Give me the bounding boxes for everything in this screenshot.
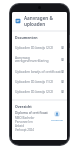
- button[interactable]: Certificaat: [50, 111, 64, 121]
- button[interactable]: Uploaden bewijs of certificaat: [15, 66, 64, 76]
- staticText: Uploaden ID-bewijs (1/2): [15, 79, 61, 83]
- other: Download: [61, 58, 64, 61]
- staticText: MBO Bachelor Personeel en: [15, 116, 48, 124]
- button[interactable]: Uploaden ID-bewijs (2/2): [15, 42, 64, 52]
- button[interactable]: Aanvraag werkgeversverklaring: [15, 52, 64, 66]
- staticText: Overzicht: [15, 104, 32, 109]
- other: Download: [61, 46, 64, 49]
- other: Certificaat: [54, 111, 60, 117]
- staticText: Uploaden bewijs of certificaat: [15, 69, 61, 73]
- button[interactable]: Uploaden ID-bewijs (1/2): [15, 76, 64, 86]
- other: Download: [61, 90, 64, 93]
- button[interactable]: Uploaden ID-bewijs (2/2): [15, 86, 64, 96]
- staticText: Documenten: [15, 35, 38, 40]
- other: App logo: [15, 18, 21, 24]
- staticText: Uploaden ID-bewijs (2/2): [15, 45, 61, 49]
- staticText: Verloopt 2024: [15, 128, 34, 132]
- staticText: Aanvragen & uploaden: [24, 15, 64, 27]
- staticText: Uploaden ID-bewijs (2/2): [15, 89, 61, 93]
- other: Download: [61, 80, 64, 83]
- staticText: Certificaat: [51, 118, 63, 121]
- button[interactable]: App logo: [12, 12, 67, 30]
- staticText: Aanvraag werkgeversverklaring: [15, 55, 61, 63]
- staticText: Arbeid: [15, 124, 24, 128]
- staticText: Diploma of certificaat: [15, 111, 48, 115]
- other: Download: [61, 70, 64, 73]
